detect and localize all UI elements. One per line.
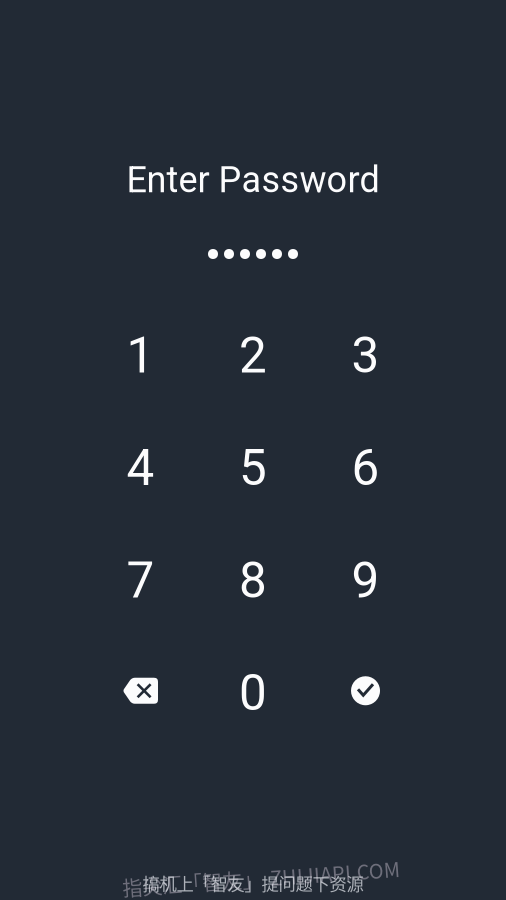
button[interactable]: 8 bbox=[197, 524, 309, 637]
staticText: Enter Password bbox=[126, 159, 379, 201]
staticText: 3 bbox=[351, 327, 379, 385]
staticText: 0 bbox=[239, 664, 267, 722]
button[interactable]: 0 bbox=[197, 637, 309, 749]
button[interactable]: 5 bbox=[197, 412, 309, 524]
staticText: 9 bbox=[351, 552, 379, 610]
staticText: 6 bbox=[351, 439, 379, 497]
staticText: 7 bbox=[126, 552, 154, 610]
button[interactable]: 1 bbox=[84, 299, 197, 412]
button[interactable]: 2 bbox=[197, 299, 309, 412]
staticText: 1 bbox=[126, 327, 154, 385]
button[interactable]: 6 bbox=[309, 412, 422, 524]
staticText: 2 bbox=[239, 327, 267, 385]
button[interactable]: 7 bbox=[84, 524, 197, 637]
button[interactable]: 9 bbox=[309, 524, 422, 637]
button[interactable]: 4 bbox=[84, 412, 197, 524]
staticText: 搞机上「智友」提问题下资源 bbox=[142, 870, 363, 896]
staticText: 4 bbox=[126, 439, 154, 497]
button[interactable]: Delete bbox=[84, 637, 197, 749]
button[interactable]: Confirm bbox=[309, 637, 422, 749]
staticText: 8 bbox=[239, 552, 267, 610]
staticText: 5 bbox=[239, 439, 267, 497]
staticText: 指尖汇「智友」 ZHIJIAPI.COM bbox=[122, 863, 400, 892]
button[interactable]: 3 bbox=[309, 299, 422, 412]
